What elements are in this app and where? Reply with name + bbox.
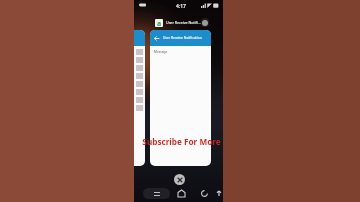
staticText: Message (154, 50, 168, 54)
button[interactable]: Hide keyboard (214, 188, 223, 197)
button[interactable]: Previous app (134, 30, 145, 166)
staticText: Subscribe For More (142, 136, 221, 147)
staticText: a (157, 19, 162, 27)
staticText: User Receive Notifi... (166, 20, 201, 25)
staticText: 4:17 (176, 3, 186, 10)
button[interactable]: Clear all (174, 174, 185, 185)
button[interactable]: Home (176, 188, 186, 198)
button[interactable]: Screenshot (201, 18, 209, 27)
button[interactable]: Back (199, 188, 209, 198)
staticText: User Receive Notification (163, 35, 202, 39)
button[interactable]: User Receive Notification app (150, 30, 211, 166)
button[interactable]: Recents (143, 188, 170, 199)
